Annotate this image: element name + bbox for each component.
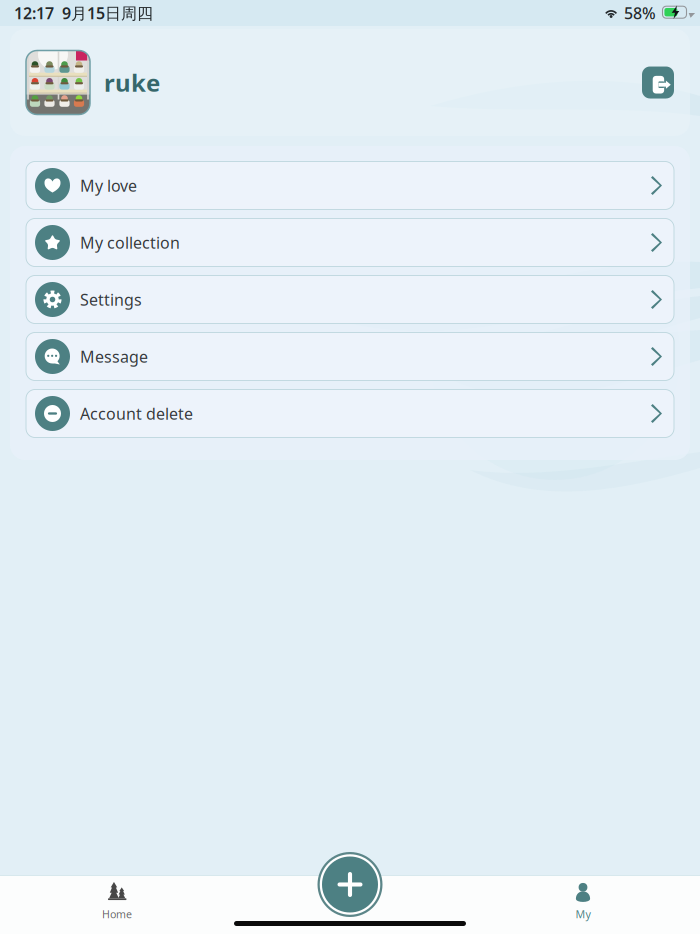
button[interactable]: My collection [26,218,674,266]
staticText: My love [80,175,137,196]
staticText: Settings [80,289,142,310]
staticText: 12:17 [14,2,54,24]
button[interactable]: Home [57,876,177,924]
button[interactable]: Message [26,332,674,380]
staticText: ruke [104,67,160,98]
button[interactable]: Add [317,852,382,917]
staticText: Message [80,346,148,367]
button[interactable]: Settings [26,275,674,323]
staticText: Account delete [80,403,193,424]
staticText: Home [102,907,132,921]
button[interactable]: Account delete [26,389,674,437]
staticText: 9月15日周四 [62,2,153,24]
button[interactable]: Log out [642,66,674,98]
button[interactable]: Profile photo [26,50,90,114]
staticText: My collection [80,232,180,253]
staticText: 58% [624,2,656,24]
staticText: My [575,907,590,921]
button[interactable]: My [523,876,643,924]
button[interactable]: My love [26,161,674,209]
